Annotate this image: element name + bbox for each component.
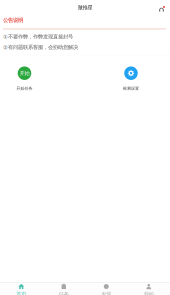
staticText: 公告说明: [3, 17, 23, 24]
staticText: 首页: [16, 291, 26, 295]
button[interactable]: 开始: [4, 66, 44, 91]
staticText: 发现: [101, 291, 111, 295]
staticText: 开始: [19, 70, 29, 76]
staticText: 我的: [144, 291, 154, 295]
staticText: ②有问题联系客服，会协助您解决: [3, 44, 78, 50]
staticText: 任务: [59, 291, 69, 295]
staticText: ①不要作弊，作弊发现直接封号: [3, 33, 73, 40]
staticText: 检测设置: [123, 86, 139, 91]
button[interactable]: 检测设置: [111, 66, 151, 91]
button[interactable]: 首页: [0, 281, 42, 295]
button[interactable]: 我的: [127, 281, 170, 295]
button[interactable]: 任务: [42, 281, 85, 295]
staticText: 开始任务: [16, 86, 32, 91]
button[interactable]: 在线客服: [156, 3, 168, 15]
button[interactable]: 发现: [85, 281, 127, 295]
staticText: 微推星: [77, 4, 92, 11]
